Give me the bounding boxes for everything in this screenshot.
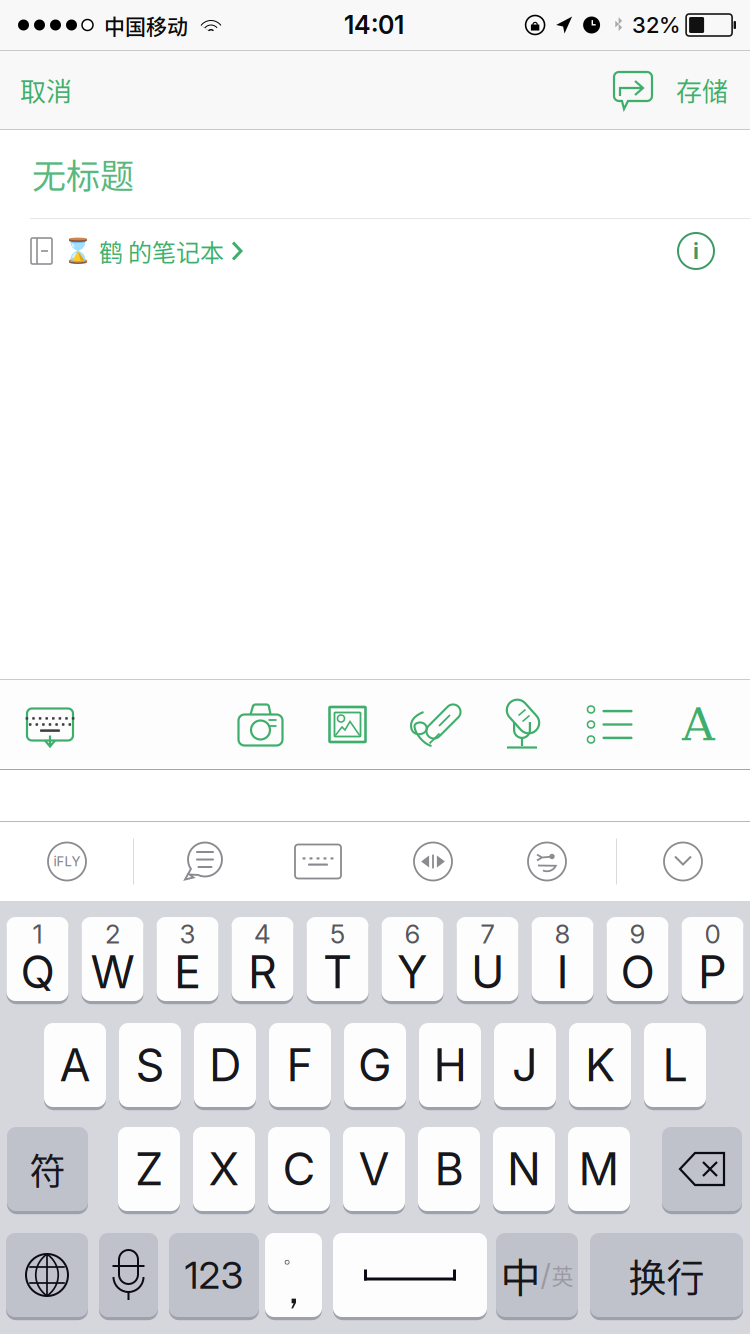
- button[interactable]: C: [268, 1126, 330, 1214]
- button[interactable]: 分享: [604, 51, 662, 129]
- button[interactable]: S: [119, 1022, 181, 1110]
- button[interactable]: 空格: [333, 1232, 487, 1320]
- button[interactable]: 换行: [590, 1232, 743, 1320]
- button[interactable]: 存储: [662, 51, 746, 129]
- staticText: S: [135, 1038, 164, 1092]
- staticText: 换行: [628, 1247, 704, 1302]
- button[interactable]: 7: [456, 916, 518, 1004]
- button[interactable]: B: [418, 1126, 480, 1214]
- button[interactable]: 6: [381, 916, 443, 1004]
- button[interactable]: 123: [169, 1232, 259, 1320]
- button[interactable]: K: [569, 1022, 631, 1110]
- button[interactable]: F: [269, 1022, 331, 1110]
- staticText: A: [59, 1038, 90, 1092]
- staticText: O: [620, 945, 654, 999]
- button[interactable]: 1: [6, 916, 68, 1004]
- staticText: B: [434, 1142, 463, 1196]
- staticText: 8: [554, 918, 570, 950]
- button[interactable]: A: [44, 1022, 106, 1110]
- staticText: W: [90, 945, 134, 999]
- button[interactable]: 中: [496, 1232, 578, 1320]
- staticText: X: [208, 1142, 239, 1196]
- button[interactable]: 移动光标: [400, 822, 466, 901]
- staticText: V: [358, 1142, 389, 1196]
- button[interactable]: M: [568, 1126, 630, 1214]
- staticText: 0: [704, 918, 720, 950]
- staticText: N: [507, 1142, 541, 1196]
- button[interactable]: 4: [231, 916, 293, 1004]
- button[interactable]: 8: [531, 916, 593, 1004]
- staticText: 9: [629, 918, 645, 950]
- staticText: 1: [32, 918, 42, 950]
- button[interactable]: 讯飞输入法: [34, 822, 100, 901]
- staticText: Q: [20, 945, 54, 999]
- staticText: H: [433, 1038, 466, 1092]
- staticText: 32%: [632, 12, 680, 38]
- button[interactable]: ⌛: [0, 219, 242, 283]
- staticText: 4: [254, 918, 271, 950]
- button[interactable]: 符: [7, 1126, 88, 1214]
- button[interactable]: 收起键盘: [6, 680, 94, 769]
- staticText: 取消: [20, 71, 72, 109]
- button[interactable]: N: [493, 1126, 555, 1214]
- staticText: I: [556, 945, 568, 999]
- staticText: L: [662, 1038, 687, 1092]
- button[interactable]: 相机: [217, 680, 304, 769]
- staticText: iFLY: [53, 854, 80, 869]
- staticText: A: [682, 698, 715, 751]
- button[interactable]: 5: [306, 916, 368, 1004]
- button[interactable]: 取消: [4, 51, 88, 129]
- button[interactable]: D: [194, 1022, 256, 1110]
- staticText: F: [286, 1038, 313, 1092]
- button[interactable]: 录音: [478, 680, 566, 769]
- button[interactable]: 2: [81, 916, 143, 1004]
- staticText: i: [693, 238, 699, 264]
- staticText: 鹤 的笔记本: [99, 234, 224, 268]
- staticText: P: [698, 945, 727, 999]
- button[interactable]: 键盘设置: [285, 822, 351, 901]
- staticText: K: [585, 1038, 615, 1092]
- button[interactable]: 手写: [391, 680, 478, 769]
- staticText: R: [248, 945, 277, 999]
- staticText: 123: [184, 1252, 243, 1298]
- button[interactable]: Z: [118, 1126, 180, 1214]
- staticText: T: [323, 945, 352, 999]
- button[interactable]: 3: [156, 916, 218, 1004]
- staticText: U: [471, 945, 504, 999]
- staticText: C: [282, 1142, 315, 1196]
- button[interactable]: 文字样式: [654, 680, 743, 769]
- button[interactable]: 0: [681, 916, 743, 1004]
- button[interactable]: X: [193, 1126, 255, 1214]
- staticText: 5: [330, 918, 345, 950]
- button[interactable]: J: [494, 1022, 556, 1110]
- button[interactable]: 图片: [304, 680, 391, 769]
- staticText: 2: [105, 918, 120, 950]
- button[interactable]: 。: [265, 1232, 322, 1320]
- staticText: 6: [404, 918, 420, 950]
- button[interactable]: G: [344, 1022, 406, 1110]
- staticText: /: [540, 1257, 550, 1293]
- button[interactable]: 信息: [664, 219, 728, 283]
- button[interactable]: L: [644, 1022, 706, 1110]
- staticText: ，: [273, 1265, 313, 1315]
- button[interactable]: 收起: [650, 822, 716, 901]
- staticText: 英: [551, 1259, 573, 1291]
- staticText: Z: [135, 1142, 163, 1196]
- staticText: J: [512, 1038, 538, 1092]
- staticText: 14:01: [344, 10, 404, 40]
- button[interactable]: 切换键盘: [6, 1232, 88, 1320]
- button[interactable]: 表情: [514, 822, 580, 901]
- button[interactable]: 消息: [171, 822, 237, 901]
- button[interactable]: 删除: [662, 1126, 742, 1214]
- button[interactable]: 语音输入: [99, 1232, 158, 1320]
- staticText: 符: [29, 1143, 65, 1195]
- button[interactable]: 列表: [566, 680, 654, 769]
- staticText: 无标题: [32, 149, 134, 199]
- button[interactable]: 9: [606, 916, 668, 1004]
- staticText: 存储: [676, 71, 728, 109]
- staticText: 7: [480, 918, 494, 950]
- staticText: ⌛: [63, 237, 93, 265]
- button[interactable]: H: [419, 1022, 481, 1110]
- staticText: 中: [500, 1246, 540, 1304]
- button[interactable]: V: [343, 1126, 405, 1214]
